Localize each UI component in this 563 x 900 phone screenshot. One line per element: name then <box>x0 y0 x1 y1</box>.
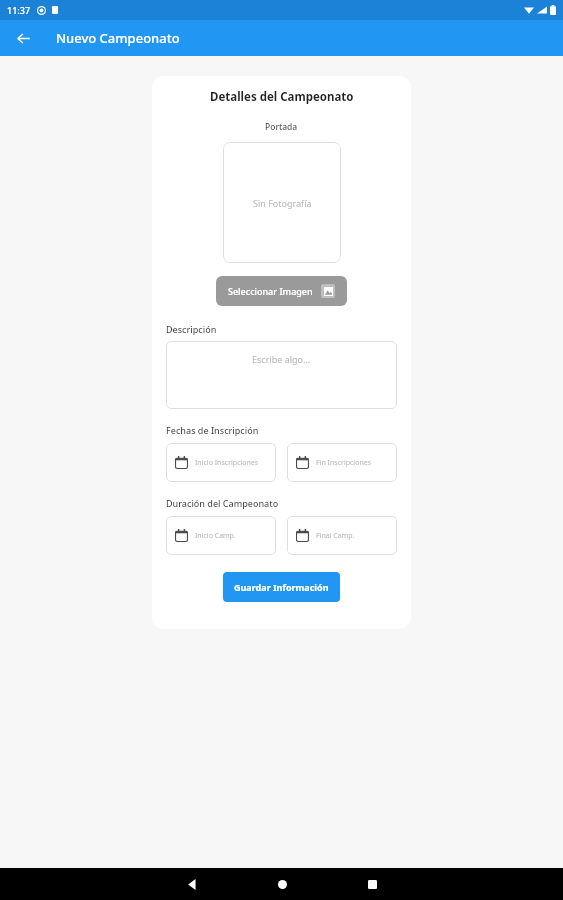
staticText: Portada <box>265 121 298 133</box>
button[interactable]: Back <box>10 25 36 51</box>
staticText: Final Camp. <box>316 531 355 541</box>
staticText: Duración del Campeonato <box>166 497 279 509</box>
staticText: Escribe algo... <box>252 353 311 365</box>
staticText: Inicio Inscripciones <box>195 458 259 468</box>
button[interactable]: Back <box>170 868 214 900</box>
button[interactable]: Final Camp. <box>287 516 397 555</box>
button[interactable]: Recents <box>350 868 394 900</box>
staticText: Descripción <box>166 323 217 335</box>
staticText: Inicio Camp. <box>195 531 236 541</box>
button[interactable]: Inicio Camp. <box>166 516 276 555</box>
button[interactable]: Fin Inscripciones <box>287 443 397 482</box>
button[interactable]: Seleccionar Imagen <box>216 276 347 306</box>
staticText: Sin Fotografía <box>253 197 312 209</box>
staticText: 11:37 <box>7 4 31 16</box>
staticText: Fin Inscripciones <box>316 458 372 468</box>
button[interactable]: Escribe algo... <box>166 341 397 409</box>
staticText: Guardar Información <box>234 581 329 593</box>
staticText: Detalles del Campeonato <box>210 89 354 105</box>
staticText: Seleccionar Imagen <box>228 285 313 297</box>
staticText: Fechas de Inscripción <box>166 424 259 436</box>
button[interactable]: Home <box>260 868 304 900</box>
staticText: Nuevo Campeonato <box>56 29 180 47</box>
button[interactable]: Inicio Inscripciones <box>166 443 276 482</box>
button[interactable]: Guardar Información <box>223 572 340 602</box>
button[interactable]: Portada <box>223 142 341 263</box>
